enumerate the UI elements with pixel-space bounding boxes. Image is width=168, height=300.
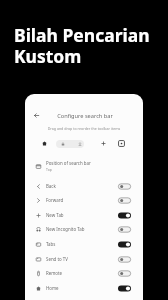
button[interactable]: Home xyxy=(39,138,49,148)
button[interactable]: New tab xyxy=(98,138,108,148)
button[interactable]: Tabs xyxy=(25,237,143,251)
staticText: New Incognito Tab xyxy=(46,226,118,232)
button[interactable]: Remote xyxy=(118,270,131,277)
button[interactable]: New Tab xyxy=(118,212,131,219)
staticText: Configure search bar xyxy=(26,112,143,120)
button[interactable]: Back xyxy=(25,179,143,193)
button[interactable]: Forward xyxy=(25,193,143,207)
staticText: Kustom xyxy=(14,44,82,68)
button[interactable]: Home xyxy=(118,285,131,292)
staticText: Remote xyxy=(46,270,118,276)
button[interactable]: Remote xyxy=(25,266,143,280)
button[interactable]: New Tab xyxy=(25,208,143,222)
button[interactable]: Back xyxy=(31,110,41,120)
button[interactable]: Tabs xyxy=(118,241,131,248)
staticText: New Tab xyxy=(46,212,118,218)
button[interactable]: Forward xyxy=(118,197,131,204)
staticText: Position of search bar xyxy=(46,160,91,166)
button[interactable]: New Incognito Tab xyxy=(25,222,143,236)
staticText: Forward xyxy=(46,197,118,203)
button[interactable]: Home xyxy=(25,281,143,295)
staticText: Tabs xyxy=(46,241,118,247)
staticText: Send to TV xyxy=(46,256,118,262)
button[interactable]: New Incognito Tab xyxy=(118,226,131,233)
staticText: Back xyxy=(46,183,118,189)
staticText: Top xyxy=(46,167,52,172)
button[interactable]: Send to TV xyxy=(118,256,131,263)
button[interactable]: Position of search bar xyxy=(25,159,143,173)
staticText: Drag and drop to reorder the toolbar ite… xyxy=(25,126,143,131)
button[interactable]: Back xyxy=(118,183,131,190)
button[interactable]: Send to TV xyxy=(25,252,143,266)
staticText: Bilah Pencarian xyxy=(14,23,150,47)
button[interactable]: Tabs xyxy=(116,138,126,148)
staticText: Home xyxy=(46,285,118,291)
